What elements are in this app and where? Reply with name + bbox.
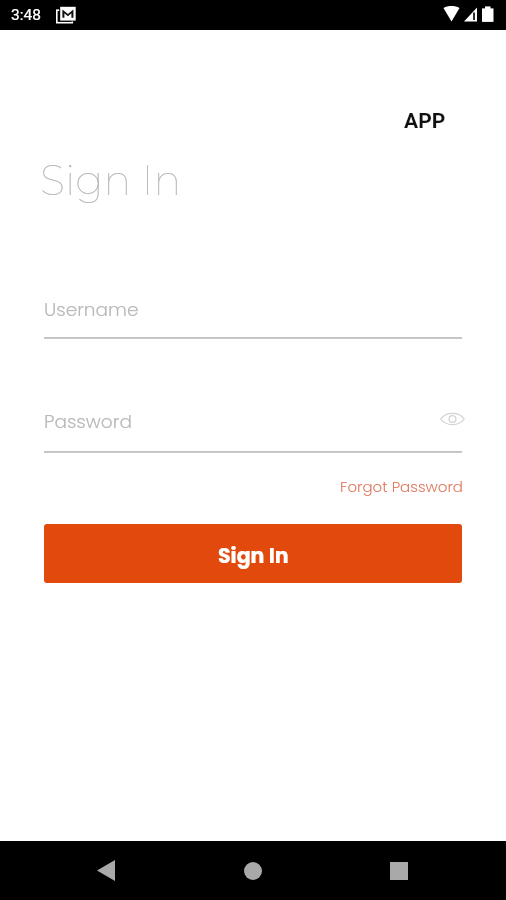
staticText: 3:48: [11, 6, 41, 24]
staticText: Password: [44, 409, 132, 435]
button[interactable]: APP: [392, 103, 458, 140]
staticText: Username: [44, 297, 139, 323]
button[interactable]: Back: [78, 841, 134, 900]
button[interactable]: Recent apps: [371, 841, 427, 900]
button[interactable]: Show password: [432, 397, 472, 440]
button[interactable]: Password: [44, 404, 422, 452]
staticText: Forgot Password: [340, 476, 463, 497]
button[interactable]: Forgot Password: [330, 471, 473, 502]
staticText: APP: [404, 109, 446, 134]
button[interactable]: Sign In: [44, 524, 462, 583]
staticText: Sign In: [218, 541, 289, 570]
button[interactable]: Username: [44, 292, 462, 338]
button[interactable]: Home: [225, 841, 281, 900]
staticText: Sign In: [40, 155, 182, 206]
